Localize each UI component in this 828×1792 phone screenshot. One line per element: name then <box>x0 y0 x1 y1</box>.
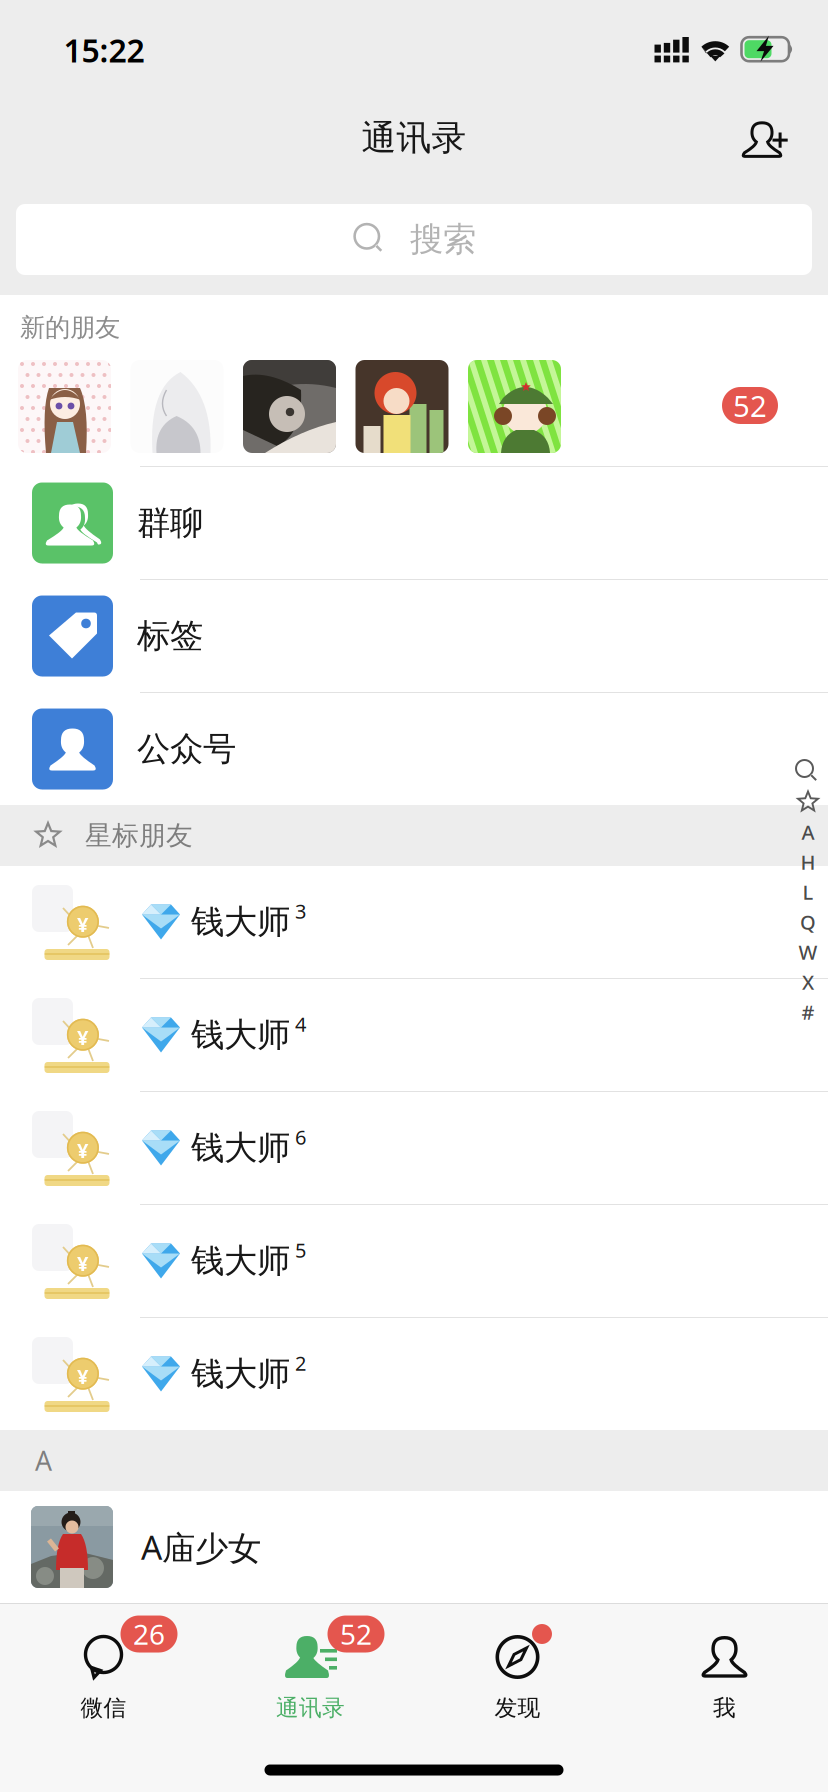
staticText: W <box>798 939 817 965</box>
button[interactable]: Q <box>788 907 828 937</box>
staticText: 52 <box>733 386 767 425</box>
staticText: 发现 <box>494 1694 540 1722</box>
staticText: 4 <box>295 1011 306 1037</box>
button[interactable]: X <box>788 967 828 997</box>
staticText: ¥ <box>77 1024 88 1051</box>
staticText: ¥ <box>77 911 88 938</box>
button[interactable]: 搜索 <box>16 204 812 275</box>
staticText: X <box>802 969 814 995</box>
staticText: 我 <box>713 1694 736 1722</box>
staticText: 钱大师 <box>191 1014 290 1055</box>
staticText: 3 <box>295 898 306 924</box>
button[interactable]: 发现 <box>414 1603 621 1792</box>
button[interactable]: L <box>788 877 828 907</box>
staticText: 群聊 <box>137 502 203 543</box>
staticText: 通讯录 <box>276 1694 345 1722</box>
button[interactable]: ¥ <box>0 1092 828 1204</box>
staticText: 搜索 <box>410 219 476 260</box>
button[interactable]: 微信 <box>0 1603 207 1792</box>
button[interactable]: W <box>788 937 828 967</box>
button[interactable]: ¥ <box>0 866 828 978</box>
button[interactable]: H <box>788 847 828 877</box>
button[interactable]: A <box>788 817 828 847</box>
staticText: L <box>802 879 813 905</box>
button[interactable]: ¥ <box>0 1205 828 1317</box>
button[interactable]: 标签 <box>0 580 828 692</box>
button[interactable]: Search contacts <box>788 757 828 787</box>
staticText: Q <box>800 909 816 935</box>
staticText: 钱大师 <box>191 901 290 942</box>
staticText: 新的朋友 <box>20 312 120 343</box>
button[interactable]: 新的朋友 <box>0 295 828 466</box>
staticText: 15:22 <box>63 29 144 71</box>
staticText: 钱大师 <box>191 1240 290 1281</box>
staticText: 26 <box>133 1615 165 1653</box>
staticText: 微信 <box>80 1694 126 1722</box>
button[interactable]: 通讯录 <box>207 1603 414 1792</box>
staticText: 钱大师 <box>191 1127 290 1168</box>
staticText: 2 <box>295 1350 306 1376</box>
staticText: 标签 <box>137 615 203 656</box>
staticText: 钱大师 <box>191 1353 290 1394</box>
button[interactable]: Add contact <box>726 104 806 176</box>
staticText: 52 <box>340 1615 372 1653</box>
button[interactable]: A庙少女 <box>0 1491 828 1603</box>
button[interactable]: # <box>788 997 828 1027</box>
button[interactable]: Starred <box>788 787 828 817</box>
staticText: # <box>801 999 814 1025</box>
staticText: ¥ <box>77 1250 88 1277</box>
button[interactable]: 公众号 <box>0 693 828 805</box>
staticText: A <box>35 1443 52 1478</box>
staticText: H <box>800 849 815 875</box>
button[interactable]: ¥ <box>0 979 828 1091</box>
staticText: ¥ <box>77 1137 88 1164</box>
staticText: ¥ <box>77 1363 88 1390</box>
staticText: 通讯录 <box>361 117 466 159</box>
button[interactable]: 我 <box>621 1603 828 1792</box>
staticText: A庙少女 <box>141 1525 261 1569</box>
button[interactable]: 群聊 <box>0 467 828 579</box>
staticText: 星标朋友 <box>85 819 193 852</box>
staticText: A <box>801 819 814 845</box>
button[interactable]: ¥ <box>0 1318 828 1430</box>
staticText: 5 <box>295 1237 306 1263</box>
staticText: 公众号 <box>137 728 236 769</box>
staticText: 6 <box>295 1124 306 1150</box>
